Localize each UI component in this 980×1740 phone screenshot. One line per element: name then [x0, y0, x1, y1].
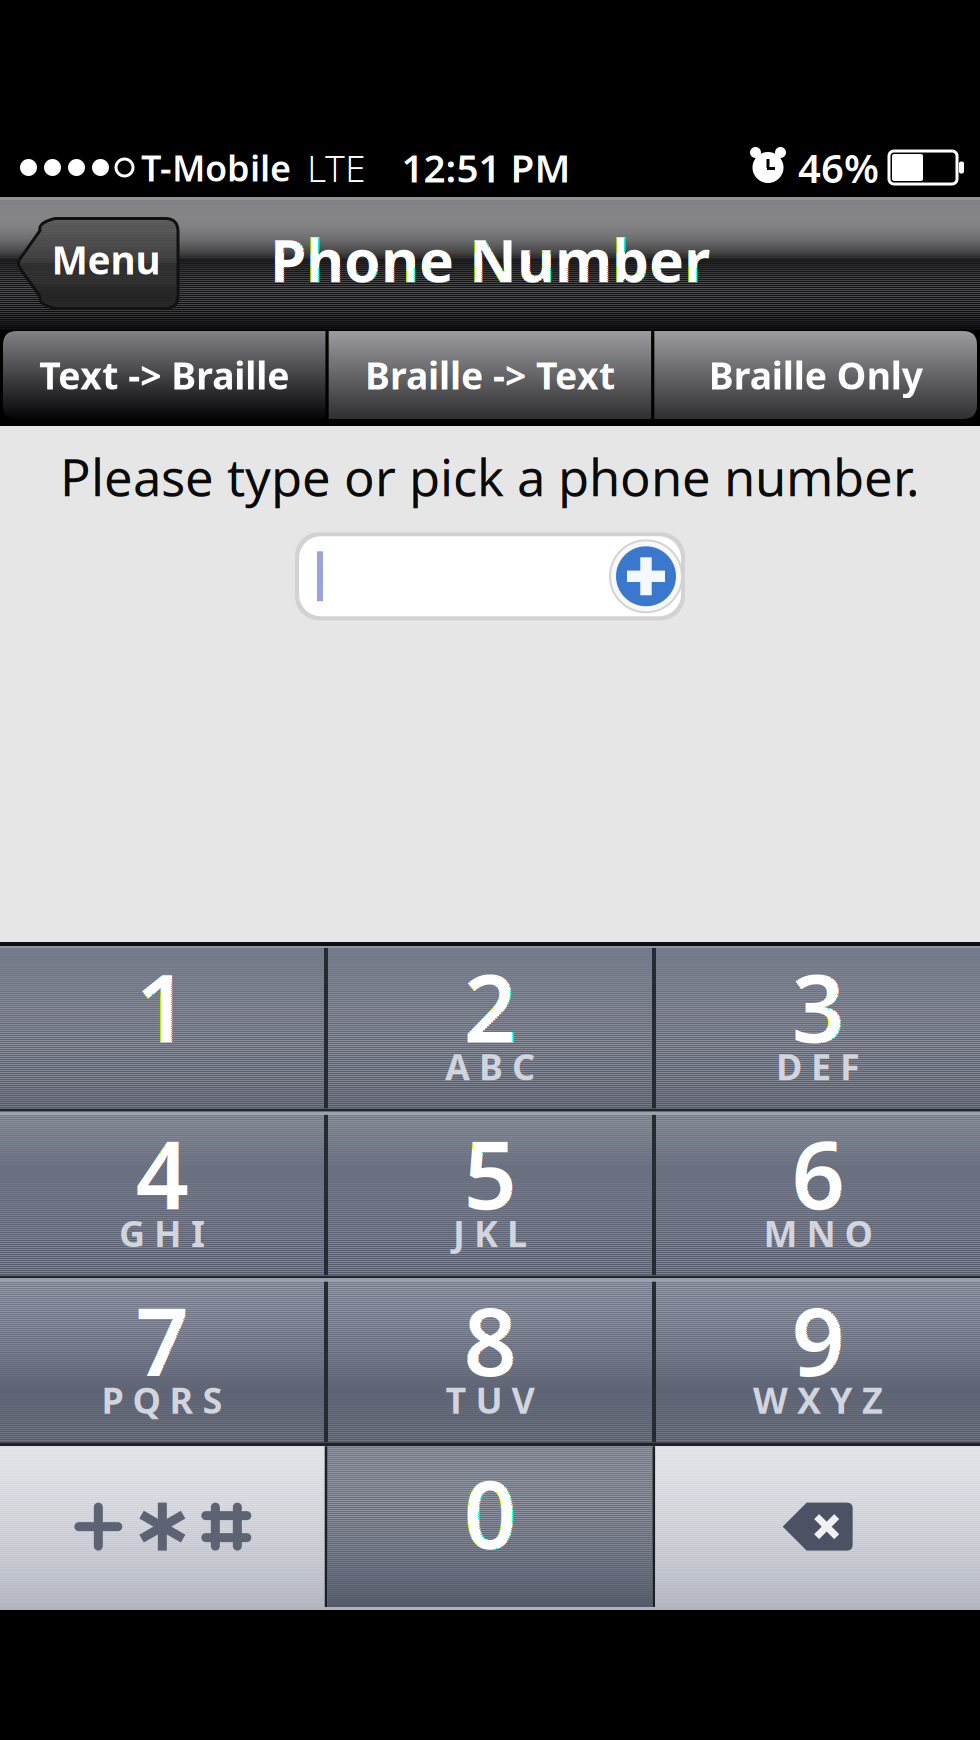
staticText: Braille Only	[709, 350, 923, 400]
button[interactable]: 4	[0, 1115, 324, 1276]
button[interactable]: Text -> Braille	[3, 331, 326, 419]
staticText: 1	[135, 944, 188, 1068]
staticText: D E F	[776, 1042, 860, 1090]
button[interactable]: Symbols	[0, 1446, 325, 1607]
staticText: 8	[463, 1278, 516, 1402]
staticText: Braille -> Text	[365, 350, 615, 400]
staticText: T U V	[445, 1376, 534, 1424]
staticText: 5	[463, 1111, 516, 1235]
button[interactable]: 7	[0, 1281, 324, 1442]
staticText: 12:51 PM	[401, 142, 570, 193]
button[interactable]: Delete	[655, 1446, 980, 1607]
staticText: 3	[791, 944, 844, 1068]
staticText: Text -> Braille	[39, 350, 289, 400]
button[interactable]: 9	[656, 1281, 980, 1442]
button[interactable]: Menu	[16, 218, 178, 308]
button[interactable]: 0	[328, 1446, 652, 1607]
staticText: 6	[791, 1111, 844, 1235]
staticText: J K L	[453, 1209, 527, 1257]
staticText: 2	[463, 944, 516, 1068]
button[interactable]: Braille -> Text	[329, 331, 651, 419]
staticText: Please type or pick a phone number.	[60, 443, 920, 510]
staticText: G H I	[119, 1209, 205, 1257]
staticText: M N O	[763, 1209, 872, 1257]
staticText: A B C	[445, 1042, 535, 1090]
staticText: W X Y Z	[753, 1376, 883, 1424]
button[interactable]: 2	[328, 948, 652, 1109]
staticText: 7	[135, 1278, 188, 1402]
staticText: LTE	[307, 143, 366, 192]
staticText: T-Mobile	[141, 144, 291, 191]
staticText: 4	[135, 1111, 188, 1235]
button[interactable]: Braille Only	[654, 331, 977, 419]
button[interactable]: Add contact	[607, 537, 685, 615]
button[interactable]: 5	[328, 1115, 652, 1276]
button[interactable]: 8	[328, 1281, 652, 1442]
staticText: 46%	[798, 141, 879, 194]
staticText: 9	[791, 1278, 844, 1402]
button[interactable]: 6	[656, 1115, 980, 1276]
staticText: Phone Number	[270, 220, 710, 298]
staticText: P Q R S	[101, 1376, 222, 1424]
button[interactable]: 1	[0, 948, 324, 1109]
staticText: 0	[463, 1451, 516, 1575]
button[interactable]: 3	[656, 948, 980, 1109]
staticText: Menu	[51, 234, 160, 285]
